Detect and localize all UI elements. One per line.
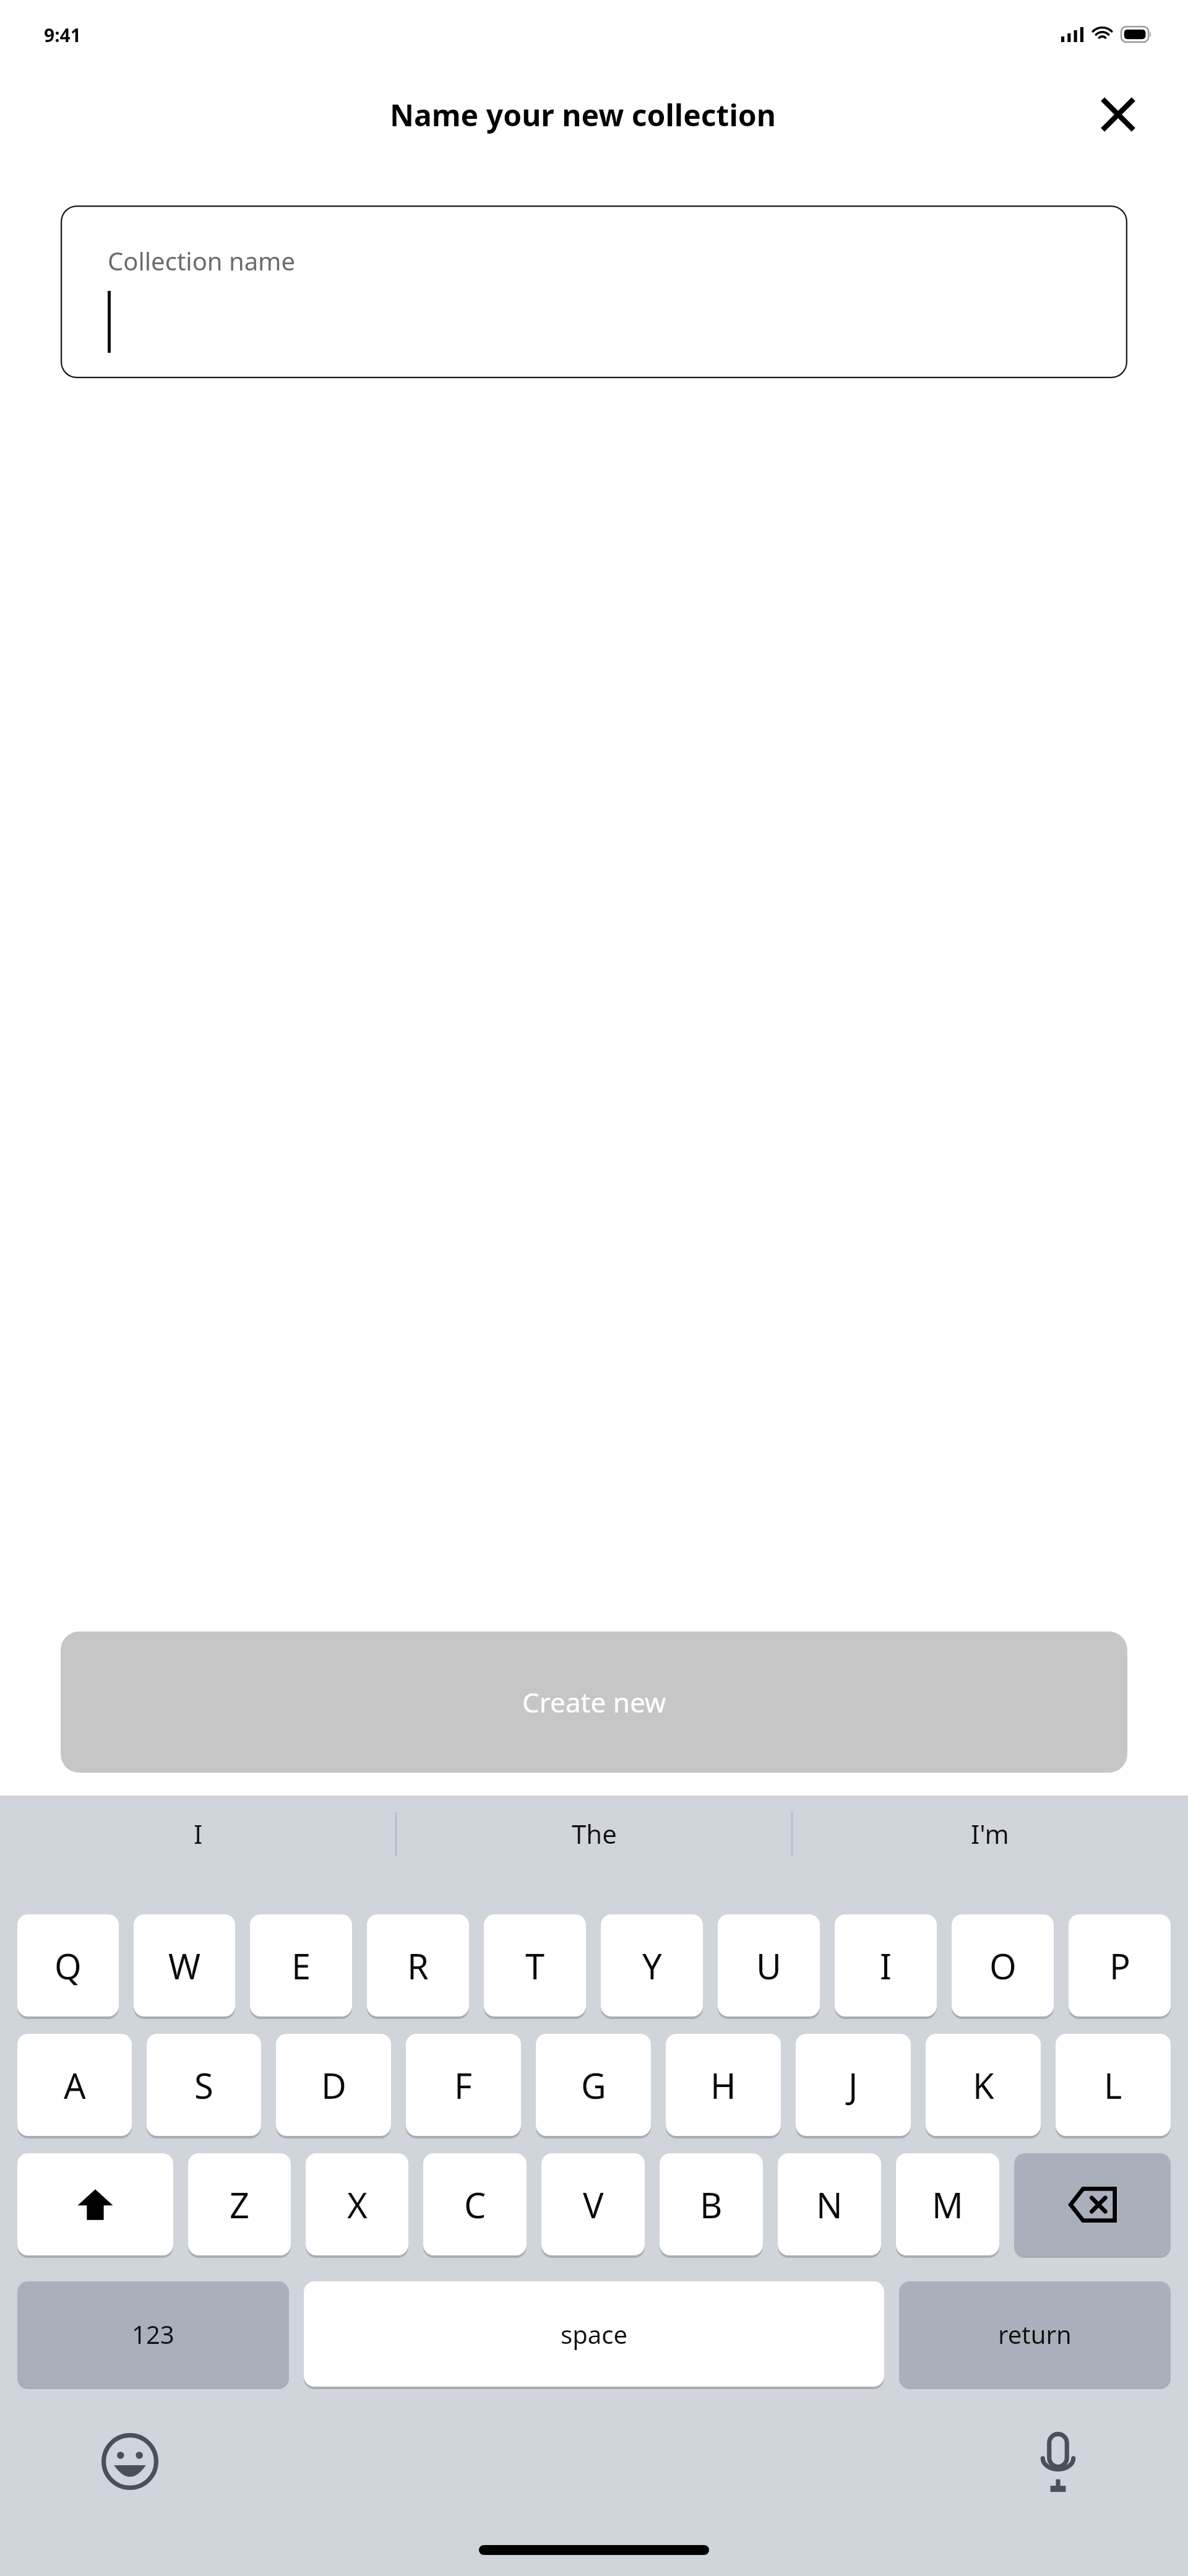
- staticText: I'm: [971, 1816, 1009, 1851]
- button[interactable]: Y: [601, 1914, 703, 2016]
- button[interactable]: S: [147, 2034, 261, 2136]
- button[interactable]: G: [536, 2034, 651, 2136]
- staticText: U: [756, 1942, 781, 1989]
- button[interactable]: M: [896, 2153, 999, 2255]
- button[interactable]: Collection name: [61, 205, 1127, 378]
- button[interactable]: C: [423, 2153, 527, 2255]
- button[interactable]: Close: [1090, 87, 1146, 142]
- button[interactable]: Z: [188, 2153, 291, 2255]
- staticText: W: [168, 1942, 201, 1989]
- button[interactable]: N: [778, 2153, 881, 2255]
- button[interactable]: D: [276, 2034, 391, 2136]
- button[interactable]: Shift: [17, 2153, 173, 2255]
- staticText: Name your new collection: [390, 95, 776, 135]
- button[interactable]: Backspace: [1014, 2153, 1171, 2255]
- staticText: The: [572, 1816, 617, 1851]
- button[interactable]: I: [0, 1796, 396, 1871]
- button[interactable]: V: [541, 2153, 645, 2255]
- button[interactable]: return: [899, 2281, 1171, 2387]
- button[interactable]: P: [1069, 1914, 1171, 2016]
- button[interactable]: Q: [17, 1914, 119, 2016]
- button[interactable]: E: [250, 1914, 352, 2016]
- staticText: I: [194, 1816, 203, 1851]
- button[interactable]: K: [926, 2034, 1041, 2136]
- button[interactable]: O: [952, 1914, 1054, 2016]
- staticText: P: [1109, 1942, 1130, 1989]
- staticText: M: [932, 2181, 963, 2228]
- button[interactable]: X: [306, 2153, 408, 2255]
- button[interactable]: A: [17, 2034, 132, 2136]
- button[interactable]: J: [796, 2034, 911, 2136]
- staticText: Create new: [522, 1683, 666, 1721]
- staticText: G: [581, 2062, 606, 2109]
- button[interactable]: B: [660, 2153, 763, 2255]
- staticText: space: [561, 2317, 627, 2351]
- staticText: Q: [54, 1942, 82, 1989]
- staticText: Y: [642, 1942, 662, 1989]
- button[interactable]: Create new: [61, 1632, 1127, 1773]
- button[interactable]: R: [367, 1914, 469, 2016]
- button[interactable]: T: [484, 1914, 586, 2016]
- button[interactable]: U: [718, 1914, 820, 2016]
- staticText: N: [816, 2181, 843, 2228]
- button[interactable]: I: [835, 1914, 937, 2016]
- staticText: C: [464, 2181, 486, 2228]
- button[interactable]: Dictation: [1024, 2427, 1092, 2496]
- staticText: O: [989, 1942, 1017, 1989]
- staticText: return: [998, 2317, 1072, 2351]
- button[interactable]: W: [134, 1914, 235, 2016]
- staticText: 123: [132, 2317, 174, 2351]
- staticText: H: [710, 2062, 736, 2109]
- staticText: X: [347, 2181, 368, 2228]
- staticText: E: [291, 1942, 311, 1989]
- button[interactable]: I'm: [792, 1796, 1188, 1871]
- staticText: J: [848, 2062, 858, 2109]
- staticText: A: [64, 2062, 86, 2109]
- staticText: D: [321, 2062, 346, 2109]
- button[interactable]: F: [406, 2034, 521, 2136]
- button[interactable]: H: [666, 2034, 781, 2136]
- staticText: K: [973, 2062, 994, 2109]
- button[interactable]: space: [304, 2281, 884, 2387]
- button[interactable]: 123: [17, 2281, 289, 2387]
- staticText: L: [1104, 2062, 1122, 2109]
- button[interactable]: Emoji: [96, 2427, 164, 2496]
- staticText: B: [700, 2181, 723, 2228]
- staticText: R: [407, 1942, 429, 1989]
- staticText: V: [583, 2181, 604, 2228]
- staticText: Z: [230, 2181, 250, 2228]
- staticText: 9:41: [44, 22, 81, 48]
- staticText: T: [525, 1942, 545, 1989]
- staticText: F: [454, 2062, 473, 2109]
- button[interactable]: L: [1056, 2034, 1171, 2136]
- staticText: Collection name: [108, 244, 296, 277]
- button[interactable]: The: [396, 1796, 792, 1871]
- staticText: I: [880, 1942, 892, 1989]
- staticText: S: [194, 2062, 213, 2109]
